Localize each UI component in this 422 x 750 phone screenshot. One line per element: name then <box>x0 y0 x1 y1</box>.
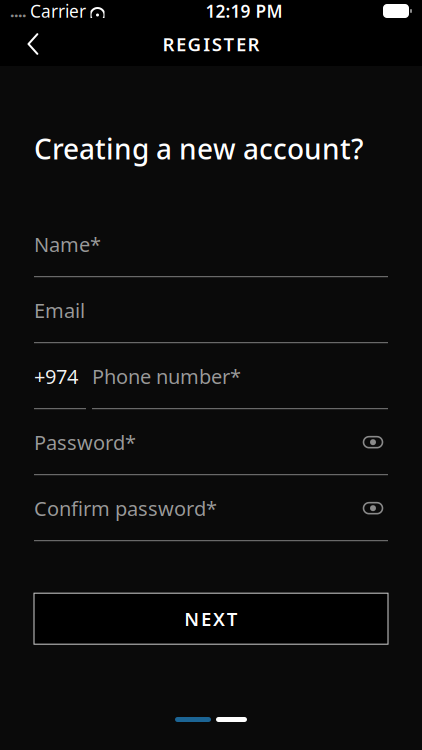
staticText: Name* <box>34 231 101 257</box>
staticText: REGISTER <box>162 32 260 56</box>
button[interactable]: Back <box>11 22 55 66</box>
staticText: +974 <box>34 363 78 389</box>
staticText: Email <box>34 297 85 323</box>
staticText: Confirm password* <box>34 495 217 521</box>
staticText: Password* <box>34 429 136 455</box>
button[interactable]: NEXT <box>34 593 388 644</box>
button[interactable]: Show Confirm password* <box>358 497 388 519</box>
button[interactable]: Show Password* <box>358 431 388 453</box>
staticText: .... <box>10 0 26 22</box>
staticText: Phone number* <box>92 363 241 389</box>
staticText: Creating a new account? <box>34 130 364 167</box>
staticText: NEXT <box>184 606 238 631</box>
staticText: 12:19 PM <box>205 0 282 22</box>
staticText: Carrier <box>30 0 86 22</box>
